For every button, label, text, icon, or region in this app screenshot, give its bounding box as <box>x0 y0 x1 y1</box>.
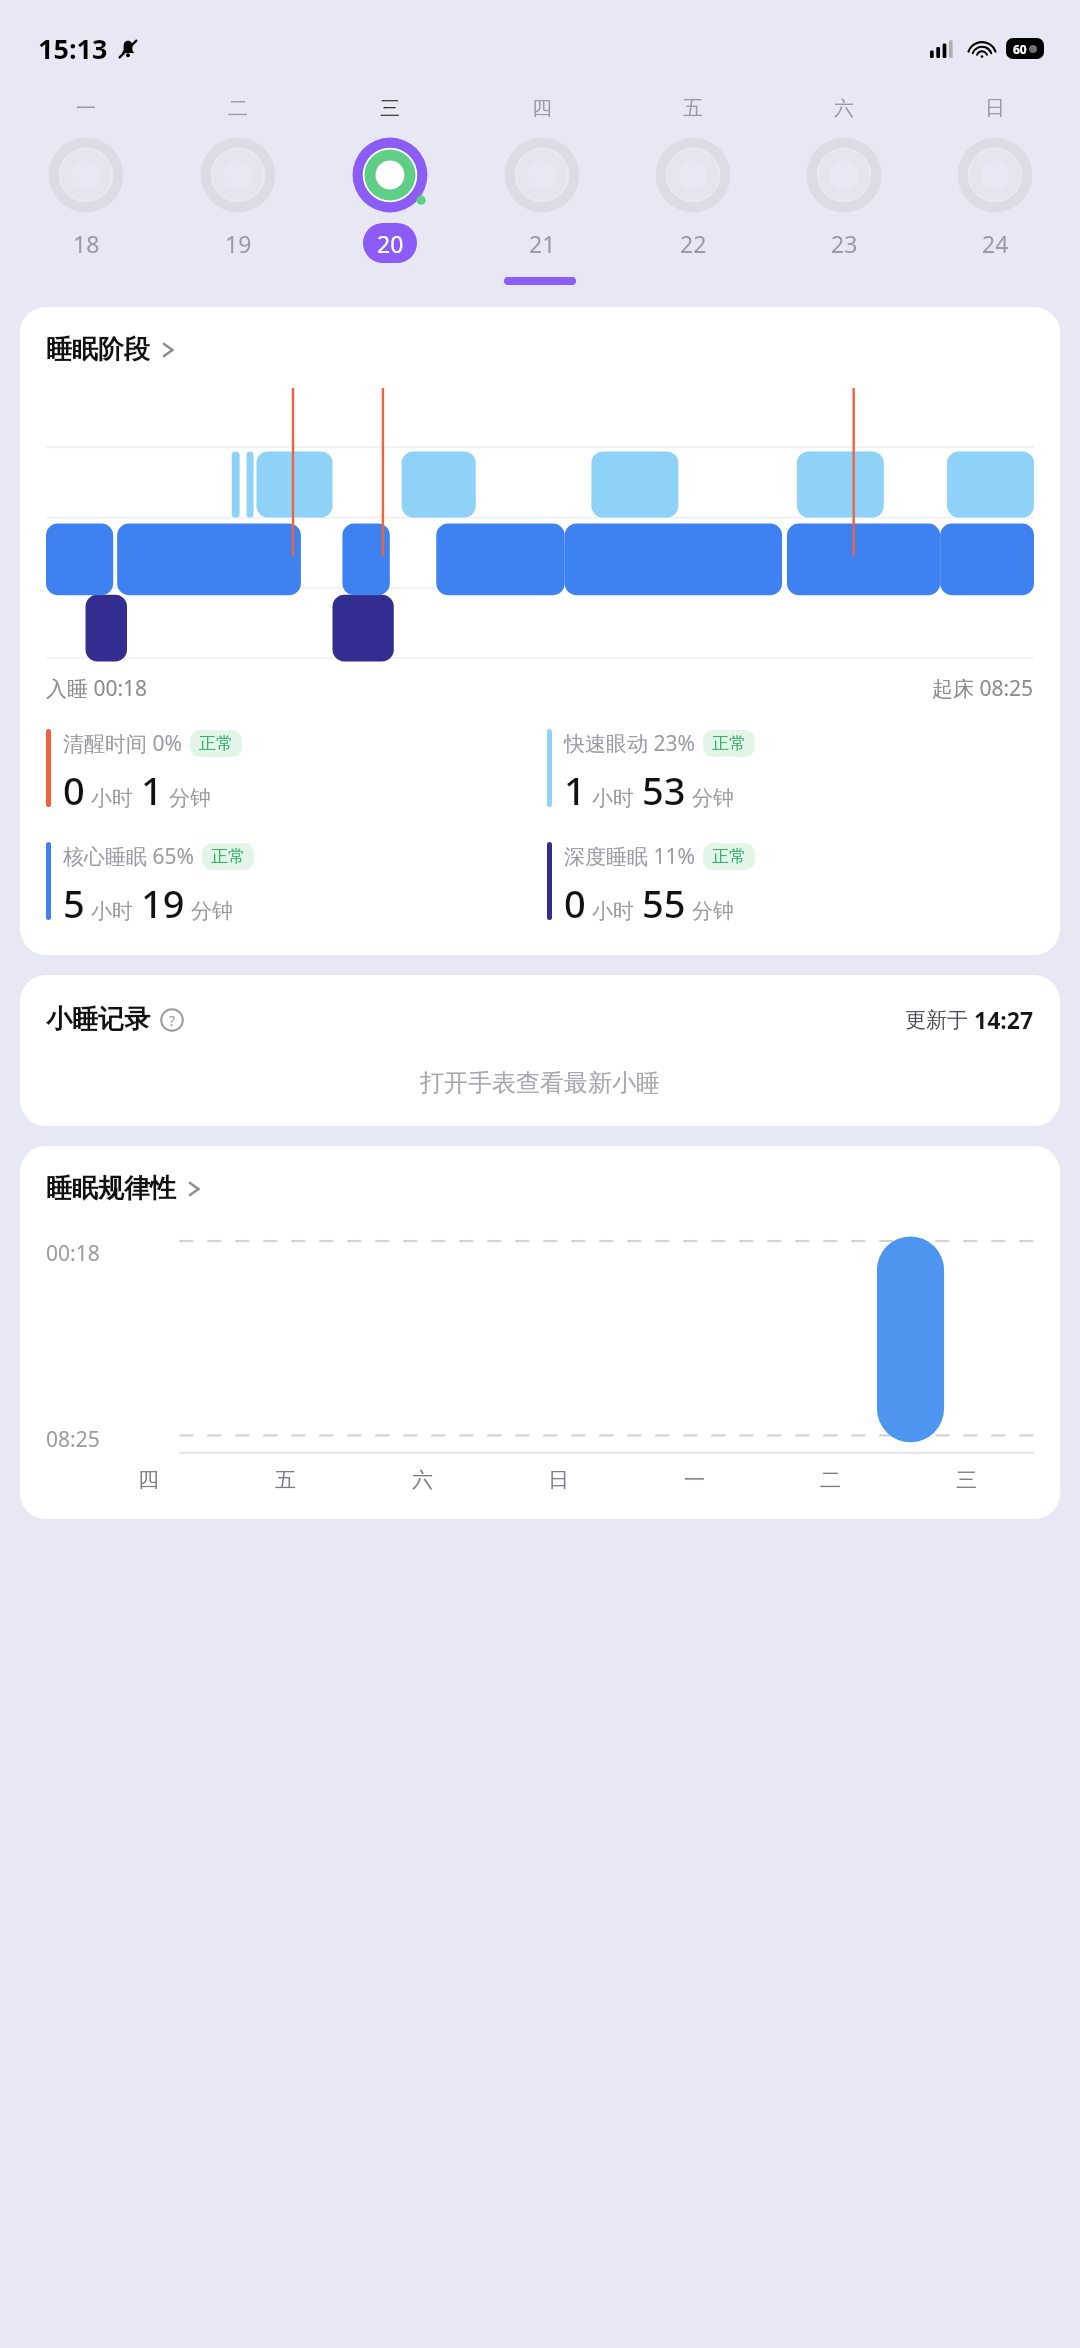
button[interactable]: 21 <box>466 133 617 263</box>
staticText: 0 <box>63 764 85 816</box>
staticText: 一 <box>76 96 96 121</box>
staticText: 三 <box>380 96 400 121</box>
button[interactable]: 22 <box>617 133 768 263</box>
staticText: 小时 <box>592 785 634 811</box>
staticText: 15:13 <box>38 30 108 67</box>
button[interactable]: 睡眠规律性 <box>46 1172 202 1205</box>
staticText: 日 <box>548 1467 569 1493</box>
staticText: 日 <box>985 96 1005 121</box>
staticText: 小时 <box>91 898 133 924</box>
staticText: 53 <box>642 764 686 816</box>
button[interactable]: 23 <box>768 133 919 263</box>
staticText: 小睡记录 <box>46 1003 150 1036</box>
button[interactable]: 核心睡眠 65% <box>46 842 533 929</box>
staticText: 正常 <box>712 733 746 754</box>
staticText: 小时 <box>592 898 634 924</box>
button[interactable]: 快速眼动 23% <box>547 729 1034 816</box>
staticText: 正常 <box>211 846 245 867</box>
button[interactable]: 24 <box>919 133 1070 263</box>
staticText: 分钟 <box>692 898 734 924</box>
button[interactable]: 20 <box>314 133 466 263</box>
staticText: 分钟 <box>692 785 734 811</box>
staticText: 六 <box>412 1467 433 1493</box>
staticText: 0 <box>564 877 586 929</box>
staticText: 清醒时间 0% <box>63 729 182 758</box>
staticText: 正常 <box>199 733 233 754</box>
staticText: 一 <box>684 1467 705 1493</box>
staticText: 更新于 <box>905 1005 974 1034</box>
staticText: 60 <box>1013 41 1027 57</box>
staticText: 19 <box>141 877 185 929</box>
staticText: 14:27 <box>974 1004 1034 1035</box>
staticText: 1 <box>564 764 586 816</box>
staticText: 分钟 <box>169 785 211 811</box>
staticText: 22 <box>680 228 707 259</box>
staticText: 快速眼动 23% <box>564 729 695 758</box>
staticText: 核心睡眠 65% <box>63 842 194 871</box>
button[interactable]: 小睡记录 <box>46 1003 184 1036</box>
staticText: 23 <box>831 228 858 259</box>
button[interactable]: 18 <box>10 133 162 263</box>
button[interactable]: Help <box>160 1008 184 1032</box>
staticText: 二 <box>228 96 248 121</box>
staticText: 正常 <box>712 846 746 867</box>
staticText: 睡眠规律性 <box>46 1172 176 1205</box>
staticText: 入睡 00:18 <box>46 674 148 703</box>
staticText: 起床 08:25 <box>932 674 1034 703</box>
staticText: 深度睡眠 11% <box>564 842 695 871</box>
button[interactable]: 19 <box>162 133 314 263</box>
button[interactable]: 睡眠阶段 <box>46 333 176 366</box>
staticText: 08:25 <box>46 1425 100 1454</box>
staticText: 四 <box>532 96 552 121</box>
staticText: 分钟 <box>191 898 233 924</box>
staticText: 五 <box>683 96 703 121</box>
staticText: 睡眠阶段 <box>46 333 150 366</box>
staticText: 四 <box>138 1467 159 1493</box>
staticText: 小时 <box>91 785 133 811</box>
staticText: ? <box>169 1011 176 1030</box>
staticText: 00:18 <box>46 1239 100 1268</box>
staticText: 二 <box>820 1467 841 1493</box>
staticText: 55 <box>642 877 686 929</box>
staticText: 18 <box>73 228 100 259</box>
staticText: 五 <box>275 1467 296 1493</box>
staticText: 三 <box>956 1467 977 1493</box>
button[interactable]: 清醒时间 0% <box>46 729 533 816</box>
staticText: 19 <box>225 228 252 259</box>
staticText: 20 <box>377 228 404 259</box>
staticText: 六 <box>834 96 854 121</box>
button[interactable]: 深度睡眠 11% <box>547 842 1034 929</box>
staticText: 24 <box>982 228 1009 259</box>
staticText: 打开手表查看最新小睡 <box>420 1068 660 1098</box>
staticText: 5 <box>63 877 85 929</box>
staticText: 21 <box>529 228 556 259</box>
staticText: 1 <box>141 764 163 816</box>
